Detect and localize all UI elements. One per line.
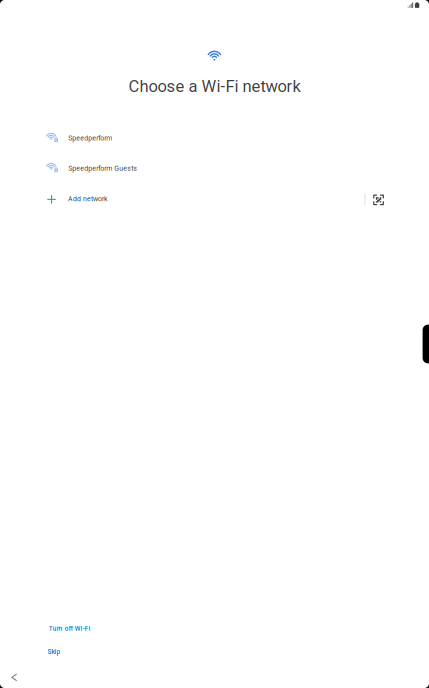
- button[interactable]: Add network: [0, 189, 429, 219]
- button[interactable]: Scan QR code: [368, 189, 390, 211]
- staticText: Turn off Wi-Fi: [49, 625, 91, 632]
- button[interactable]: Speedperform: [0, 128, 429, 158]
- staticText: Skip: [47, 648, 60, 656]
- button[interactable]: Turn off Wi-Fi: [49, 621, 109, 635]
- button[interactable]: Back: [3, 666, 25, 688]
- staticText: Speedperform: [68, 134, 112, 142]
- button[interactable]: Speedperform Guests: [0, 159, 429, 189]
- staticText: Speedperform Guests: [68, 164, 137, 172]
- staticText: Choose a Wi-Fi network: [128, 77, 300, 96]
- button[interactable]: Skip: [47, 644, 77, 658]
- staticText: Add network: [68, 195, 108, 203]
